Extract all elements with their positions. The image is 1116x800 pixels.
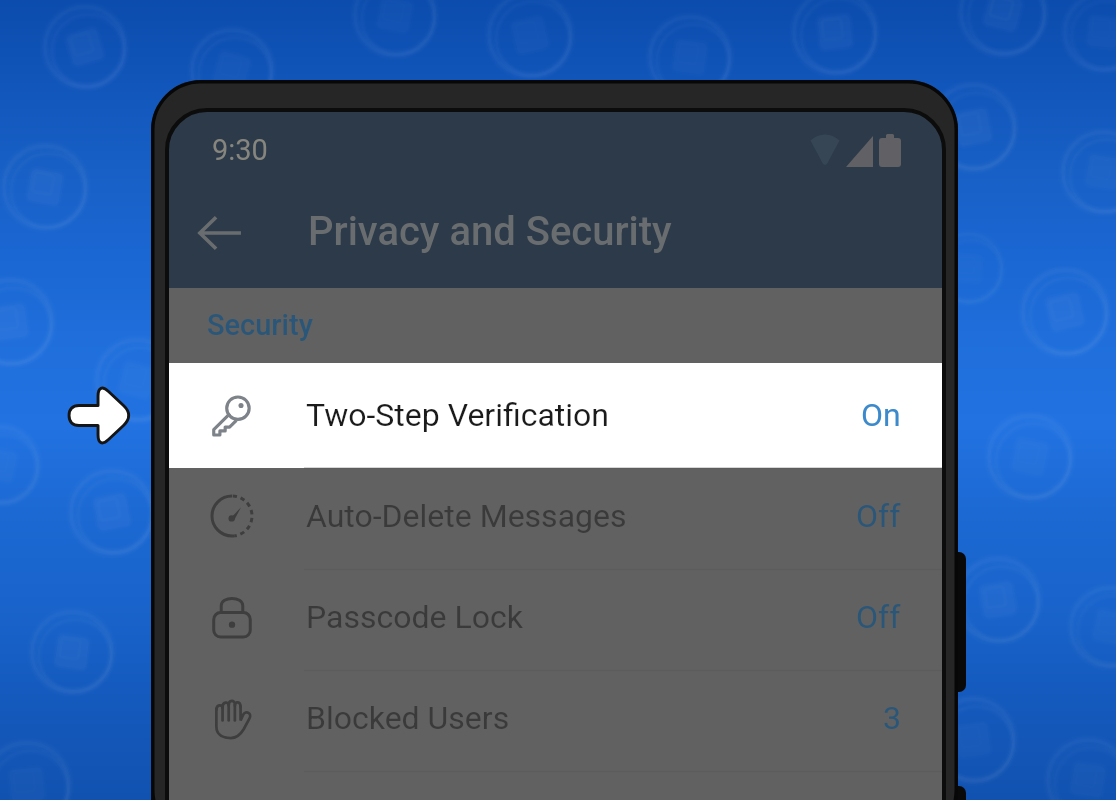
staticText: Security: [207, 308, 313, 342]
staticText: Off: [856, 598, 901, 636]
staticText: Passcode Lock: [306, 598, 523, 636]
staticText: Privacy and Security: [308, 208, 672, 255]
button[interactable]: Auto-Delete Messages: [168, 468, 943, 569]
staticText: On: [861, 396, 901, 434]
other: Highlighted setting: [56, 374, 146, 460]
staticText: Blocked Users: [306, 699, 510, 737]
staticText: Two-Step Verification: [306, 396, 610, 434]
staticText: 9:30: [212, 133, 268, 167]
staticText: Auto-Delete Messages: [306, 497, 627, 535]
staticText: Off: [856, 497, 901, 535]
button[interactable]: Back: [186, 200, 252, 266]
staticText: 3: [883, 699, 901, 737]
button[interactable]: Passcode Lock: [168, 569, 943, 670]
button[interactable]: Blocked Users: [168, 670, 943, 771]
button[interactable]: Two-Step Verification: [168, 363, 943, 468]
